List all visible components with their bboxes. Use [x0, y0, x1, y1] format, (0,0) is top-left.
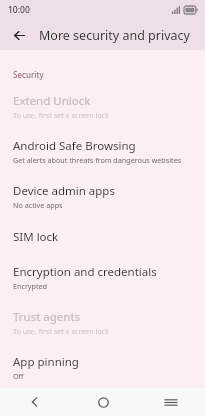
- button[interactable]: Recent apps: [137, 388, 205, 416]
- staticText: Security: [13, 69, 44, 80]
- staticText: SIM lock: [13, 229, 59, 245]
- staticText: 10:00: [8, 4, 30, 16]
- button[interactable]: Back: [0, 388, 69, 416]
- staticText: Android Safe Browsing: [13, 138, 136, 154]
- staticText: Encrypted: [13, 281, 48, 291]
- button[interactable]: SIM lock: [0, 212, 205, 247]
- staticText: Encryption and credentials: [13, 264, 157, 280]
- button[interactable]: Back: [6, 22, 32, 48]
- staticText: Get alerts about threats from dangerous …: [13, 155, 182, 165]
- staticText: Device admin apps: [13, 183, 115, 199]
- staticText: Off: [13, 371, 24, 381]
- button[interactable]: Encryption and credentials: [0, 247, 205, 293]
- button[interactable]: Device admin apps: [0, 167, 205, 212]
- button[interactable]: Android Safe Browsing: [0, 122, 205, 167]
- button[interactable]: Home: [69, 388, 137, 416]
- staticText: Trust agents: [13, 309, 81, 325]
- staticText: No active apps: [13, 200, 63, 210]
- button[interactable]: App pinning: [0, 338, 205, 383]
- button[interactable]: Extend Unlock: [0, 80, 205, 122]
- staticText: To use, first set a screen lock: [13, 326, 110, 336]
- staticText: Extend Unlock: [13, 93, 91, 109]
- staticText: To use, first set a screen lock: [13, 110, 110, 120]
- button[interactable]: Trust agents: [0, 293, 205, 338]
- staticText: More security and privacy: [39, 27, 190, 44]
- staticText: App pinning: [13, 354, 79, 370]
